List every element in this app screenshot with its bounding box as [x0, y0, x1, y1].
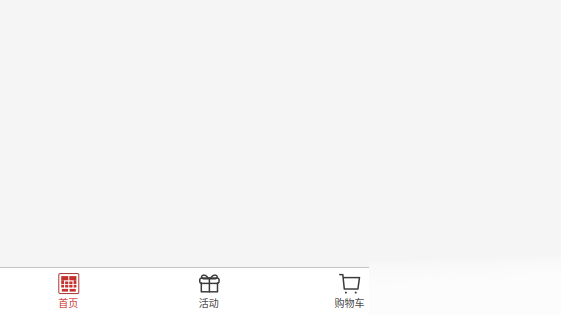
button[interactable]: 首页: [0, 267, 138, 315]
button[interactable]: 购物车: [279, 267, 419, 315]
staticText: 首页: [58, 295, 78, 310]
button[interactable]: 活动: [139, 267, 279, 315]
staticText: 活动: [199, 295, 219, 310]
staticText: 购物车: [334, 295, 364, 310]
